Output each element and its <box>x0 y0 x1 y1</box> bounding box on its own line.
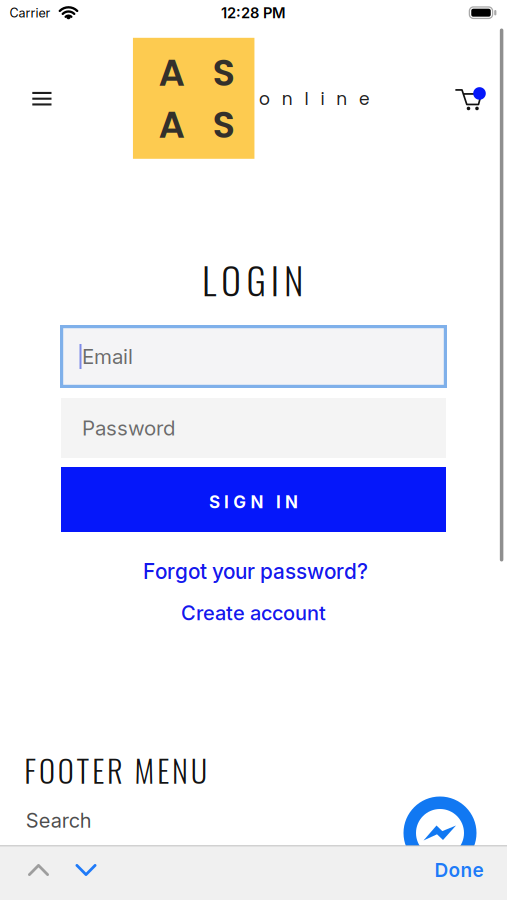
staticText: Forgot your password? <box>143 559 368 584</box>
button[interactable]: S <box>61 467 446 532</box>
staticText: R <box>107 747 123 793</box>
staticText: E <box>157 747 169 793</box>
staticText: Create account <box>181 601 326 625</box>
staticText: 12:28 PM <box>221 4 286 22</box>
staticText: l <box>305 87 309 111</box>
staticText: U <box>191 747 207 793</box>
staticText: Search <box>26 808 92 833</box>
staticText: I <box>271 252 279 307</box>
staticText: Password <box>82 416 176 440</box>
button[interactable]: Password <box>61 398 446 458</box>
button[interactable]: Done <box>434 858 483 881</box>
button[interactable]: Search <box>26 808 92 833</box>
staticText: e <box>359 87 370 111</box>
staticText: O <box>58 747 74 793</box>
staticText: O <box>221 252 241 307</box>
staticText: F <box>24 747 36 793</box>
staticText: A <box>158 99 184 151</box>
staticText: M <box>134 747 154 793</box>
button[interactable] <box>75 864 96 876</box>
staticText: S <box>212 47 235 99</box>
staticText: n <box>336 87 347 111</box>
staticText: N <box>250 492 263 512</box>
button[interactable]: Forgot your password? <box>143 559 368 584</box>
staticText: E <box>92 747 104 793</box>
button[interactable]: A <box>133 38 254 159</box>
button[interactable] <box>32 92 51 105</box>
staticText: n <box>282 87 293 111</box>
staticText: T <box>76 747 89 793</box>
staticText: i <box>320 87 324 111</box>
staticText: L <box>202 252 216 307</box>
staticText: I <box>276 492 281 512</box>
staticText: S <box>209 492 220 512</box>
staticText: Carrier <box>9 5 50 21</box>
staticText: G <box>233 492 246 512</box>
staticText: I <box>224 492 229 512</box>
button[interactable]: Email <box>60 325 447 388</box>
staticText: S <box>212 99 235 151</box>
staticText: O <box>39 747 55 793</box>
staticText: G <box>246 252 265 307</box>
button[interactable] <box>455 87 486 110</box>
button[interactable] <box>28 864 49 876</box>
staticText: N <box>285 492 298 512</box>
staticText: Done <box>434 858 483 881</box>
staticText: N <box>172 747 188 793</box>
staticText: N <box>284 252 303 307</box>
staticText: Email <box>82 344 133 369</box>
staticText: A <box>158 47 184 99</box>
button[interactable] <box>403 796 476 869</box>
staticText: o <box>259 87 270 111</box>
button[interactable]: Create account <box>181 601 326 625</box>
